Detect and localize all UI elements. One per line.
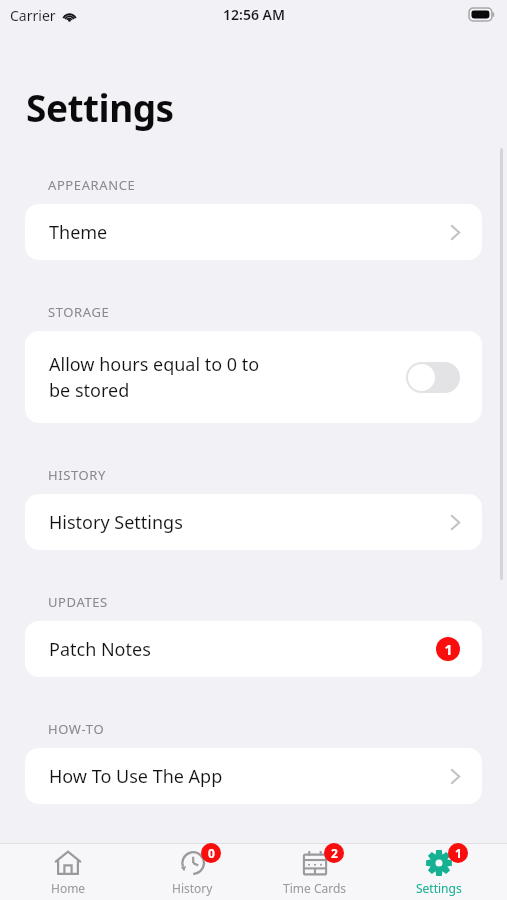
staticText: STORAGE	[48, 303, 110, 321]
button[interactable]: Allow hours equal to 0 toggle	[406, 362, 460, 393]
staticText: Carrier	[10, 6, 56, 25]
staticText: 0	[208, 845, 215, 861]
staticText: 2	[331, 845, 338, 861]
staticText: Time Cards	[283, 880, 347, 896]
staticText: How To Use The App	[49, 764, 450, 789]
staticText: Settings	[26, 82, 174, 132]
staticText: 1	[444, 640, 453, 659]
button[interactable]: 1	[384, 844, 494, 900]
staticText: UPDATES	[48, 593, 108, 611]
staticText: HOW-TO	[48, 720, 105, 738]
staticText: REVIEW	[48, 847, 99, 865]
staticText: Settings	[416, 880, 462, 896]
button[interactable]: Patch Notes	[25, 621, 482, 677]
staticText: 1	[455, 845, 462, 861]
button[interactable]: History Settings	[25, 494, 482, 550]
staticText: Allow hours equal to 0 to be stored	[49, 352, 406, 402]
staticText: 12:56 AM	[223, 5, 285, 24]
button[interactable]: Allow hours equal to 0 to be stored	[25, 331, 482, 423]
staticText: History	[172, 880, 213, 896]
button[interactable]: How To Use The App	[25, 748, 482, 804]
staticText: HISTORY	[48, 466, 106, 484]
button[interactable]: 2	[260, 844, 370, 900]
staticText: APPEARANCE	[48, 176, 136, 194]
staticText: Theme	[49, 220, 450, 245]
button[interactable]: Theme	[25, 204, 482, 260]
button[interactable]: Home	[13, 844, 123, 900]
button[interactable]: 0	[137, 844, 247, 900]
staticText: Patch Notes	[49, 637, 436, 662]
staticText: Home	[51, 880, 86, 896]
staticText: History Settings	[49, 510, 450, 535]
